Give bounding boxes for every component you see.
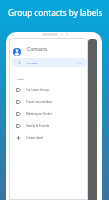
button[interactable]: Contacts filter: [12, 58, 87, 67]
button[interactable]: Create label: [9, 132, 88, 144]
button[interactable]: Meeting on Tinder: [9, 108, 88, 120]
button[interactable]: Contacts: [9, 42, 88, 58]
staticText: Group contacts by labels: [8, 7, 103, 18]
other: Contacts filter: [18, 61, 21, 64]
staticText: Contacts: [27, 61, 38, 64]
button[interactable]: Family & Friends: [9, 120, 88, 132]
button[interactable]: Travel around Asia: [9, 96, 88, 108]
staticText: Cat Lover Group: [26, 88, 49, 92]
staticText: Create label: [26, 136, 43, 140]
staticText: Meeting on Tinder: [26, 112, 52, 116]
staticText: Travel around Asia: [26, 100, 52, 104]
staticText: Family & Friends: [26, 124, 50, 128]
staticText: Labels: [17, 78, 24, 81]
button[interactable]: Cat Lover Group: [9, 84, 88, 96]
staticText: Contacts: [27, 46, 48, 53]
staticText: 14: [78, 61, 81, 64]
